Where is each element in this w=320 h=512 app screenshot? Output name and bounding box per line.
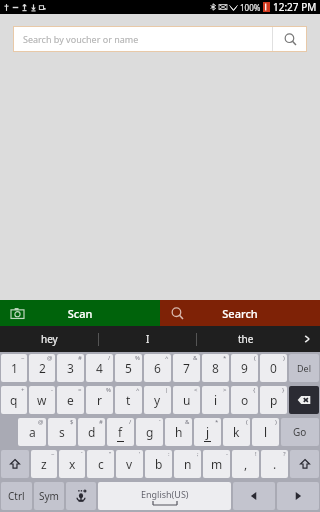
button[interactable]: the [197, 326, 294, 352]
button[interactable]: d [78, 418, 105, 446]
staticText: hey [41, 332, 58, 346]
button[interactable]: 8 [202, 354, 229, 382]
button[interactable]: More suggestions [294, 326, 320, 352]
button[interactable]: English(US) [98, 482, 231, 510]
staticText: d [88, 424, 96, 440]
staticText: * [215, 418, 219, 426]
button[interactable]: b [145, 450, 172, 478]
staticText: a [29, 424, 36, 440]
staticText: ) [275, 418, 277, 426]
button[interactable]: z [31, 450, 57, 478]
staticText: r [97, 392, 102, 408]
button[interactable]: o [231, 386, 258, 414]
button[interactable]: Del [289, 354, 319, 382]
button[interactable]: e [57, 386, 84, 414]
button[interactable]: y [144, 386, 171, 414]
staticText: & [193, 354, 198, 362]
button[interactable]: Shift [1, 450, 29, 478]
button[interactable]: j [194, 418, 221, 446]
button[interactable]: 4 [86, 354, 113, 382]
staticText: I [146, 332, 150, 346]
button[interactable]: f [107, 418, 134, 446]
staticText: ` [159, 418, 161, 426]
staticText: = [78, 386, 82, 394]
button[interactable]: . [261, 450, 288, 478]
button[interactable]: m [203, 450, 230, 478]
button[interactable]: Cursor left [233, 482, 275, 510]
staticText: Search [194, 306, 286, 321]
staticText: o [241, 392, 249, 408]
staticText: 6 [154, 360, 161, 376]
button[interactable]: 0 [260, 354, 287, 382]
button[interactable]: 5 [115, 354, 142, 382]
button[interactable]: p [260, 386, 287, 414]
button[interactable]: 1 [1, 354, 27, 382]
staticText: 3 [67, 360, 74, 376]
button[interactable]: g [136, 418, 163, 446]
button[interactable]: v [116, 450, 143, 478]
staticText: 12:27 PM [273, 0, 317, 14]
button[interactable]: Search [160, 300, 320, 326]
button[interactable]: 6 [144, 354, 171, 382]
button[interactable]: 3 [57, 354, 84, 382]
staticText: 9 [241, 360, 248, 376]
button[interactable]: q [1, 386, 27, 414]
staticText: ( [246, 418, 248, 426]
button[interactable]: n [174, 450, 201, 478]
button[interactable]: Scan [0, 300, 160, 326]
staticText: e [67, 392, 74, 408]
staticText: k [233, 424, 240, 440]
staticText: b [155, 456, 163, 472]
button[interactable]: Go [281, 418, 319, 446]
staticText: ' [139, 450, 141, 458]
button[interactable]: Search [273, 26, 307, 52]
staticText: t [126, 392, 131, 408]
staticText: & [185, 418, 190, 426]
button[interactable]: 9 [231, 354, 258, 382]
button[interactable]: Backspace [289, 386, 319, 414]
staticText: > [223, 386, 227, 394]
staticText: z [41, 456, 47, 472]
button[interactable]: k [223, 418, 250, 446]
button[interactable]: x [59, 450, 85, 478]
button[interactable]: r [86, 386, 113, 414]
staticText: - [226, 450, 228, 458]
staticText: y [154, 392, 161, 408]
staticText: " [109, 450, 112, 458]
button[interactable]: h [165, 418, 192, 446]
button[interactable]: 7 [173, 354, 200, 382]
button[interactable]: Voice input [66, 482, 96, 510]
button[interactable]: Sym [34, 482, 64, 510]
button[interactable]: Ctrl [1, 482, 32, 510]
staticText: u [183, 392, 191, 408]
staticText: 4 [96, 360, 103, 376]
button[interactable]: 2 [29, 354, 55, 382]
staticText: 0 [270, 360, 277, 376]
button[interactable]: hey [0, 326, 98, 352]
button[interactable]: Shift [290, 450, 319, 478]
staticText: x [69, 456, 76, 472]
button[interactable]: t [115, 386, 142, 414]
button[interactable]: c [87, 450, 114, 478]
staticText: Ctrl [8, 489, 25, 503]
staticText: l [264, 424, 268, 440]
staticText: the [238, 332, 254, 346]
button[interactable]: , [232, 450, 259, 478]
button[interactable]: Search by voucher or name [13, 26, 307, 52]
staticText: v [126, 456, 133, 472]
button[interactable]: Cursor right [277, 482, 319, 510]
staticText: $ [70, 418, 74, 426]
button[interactable]: I [99, 326, 196, 352]
button[interactable]: u [173, 386, 200, 414]
staticText: 8 [212, 360, 219, 376]
staticText: English(US) [141, 488, 189, 500]
button[interactable]: l [252, 418, 279, 446]
staticText: * [223, 354, 227, 362]
staticText: } [282, 386, 285, 394]
button[interactable]: s [48, 418, 76, 446]
button[interactable]: i [202, 386, 229, 414]
button[interactable]: a [18, 418, 46, 446]
staticText: c [98, 456, 104, 472]
staticText: ` [81, 450, 83, 458]
button[interactable]: w [29, 386, 55, 414]
